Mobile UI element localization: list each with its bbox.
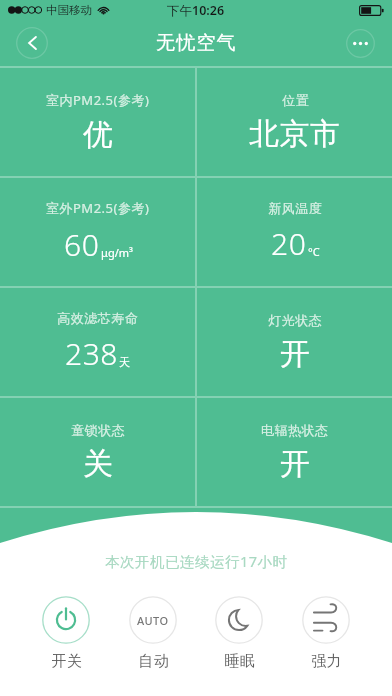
button[interactable]: Turbo mode	[297, 596, 355, 671]
staticText: 本次开机已连续运行17小时	[105, 551, 288, 571]
button[interactable]: 高效滤芯寿命	[0, 288, 195, 396]
staticText: μg/m³	[101, 245, 133, 260]
staticText: 睡眠	[224, 652, 255, 671]
staticText: 高效滤芯寿命	[57, 310, 138, 326]
button[interactable]: Sleep mode	[210, 596, 268, 671]
staticText: 开	[280, 335, 311, 373]
staticText: 室内PM2.5(参考)	[46, 91, 150, 109]
button[interactable]: 童锁状态	[0, 398, 195, 506]
staticText: AUTO	[137, 613, 169, 628]
button[interactable]: Auto mode	[124, 596, 182, 671]
staticText: 强力	[311, 652, 342, 671]
button[interactable]: 新风温度	[197, 178, 392, 286]
staticText: 关	[83, 445, 114, 483]
staticText: 中国移动	[46, 3, 92, 17]
staticText: 开	[280, 445, 311, 483]
staticText: 20	[271, 223, 307, 264]
staticText: 新风温度	[268, 200, 322, 216]
button[interactable]: 室外PM2.5(参考)	[0, 178, 195, 286]
staticText: 灯光状态	[268, 312, 322, 328]
staticText: 童锁状态	[71, 422, 125, 438]
button[interactable]: 电辐热状态	[197, 398, 392, 506]
staticText: 60	[64, 224, 100, 265]
button[interactable]: 灯光状态	[197, 288, 392, 396]
staticText: 238	[65, 333, 118, 374]
staticText: 优	[83, 116, 114, 154]
staticText: 北京市	[249, 115, 341, 153]
staticText: 无忧空气	[156, 31, 237, 55]
button[interactable]: Power	[37, 596, 95, 671]
staticText: 室外PM2.5(参考)	[46, 199, 150, 217]
button[interactable]: 室内PM2.5(参考)	[0, 68, 195, 176]
staticText: 天	[119, 355, 130, 369]
staticText: °C	[308, 244, 320, 259]
button[interactable]: More options	[346, 29, 375, 58]
button[interactable]: 位置	[197, 68, 392, 176]
staticText: 下午10:26	[167, 2, 225, 19]
staticText: 自动	[138, 652, 169, 671]
staticText: 开关	[51, 652, 82, 671]
button[interactable]: Back	[16, 27, 48, 59]
staticText: 位置	[282, 92, 309, 108]
staticText: 电辐热状态	[261, 422, 329, 438]
